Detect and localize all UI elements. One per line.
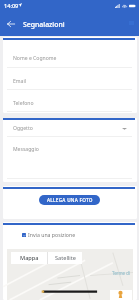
button[interactable]: More options (127, 18, 136, 27)
staticText: Terme di (112, 270, 130, 276)
button[interactable]: Open dropdown (118, 122, 130, 134)
button[interactable]: ALLEGA UNA FOTO (39, 195, 100, 205)
staticText: Email (13, 78, 27, 85)
button[interactable]: Invia una posizione (22, 231, 76, 238)
button[interactable]: Mappa (11, 252, 47, 264)
staticText: Messaggio (13, 146, 39, 153)
staticText: Telefono (13, 100, 34, 107)
staticText: 14:09 (4, 2, 19, 10)
staticText: Satellite (55, 254, 76, 262)
staticText: Invia una posizione (28, 231, 76, 238)
staticText: Segnalazioni (23, 20, 65, 29)
button[interactable]: Satellite (48, 252, 82, 264)
staticText: Nome e Cognome (13, 55, 57, 62)
button[interactable]: Back (3, 16, 18, 31)
staticText: Mappa (20, 254, 39, 262)
staticText: ALLEGA UNA FOTO (47, 197, 93, 203)
staticText: Oggetto (13, 125, 33, 132)
